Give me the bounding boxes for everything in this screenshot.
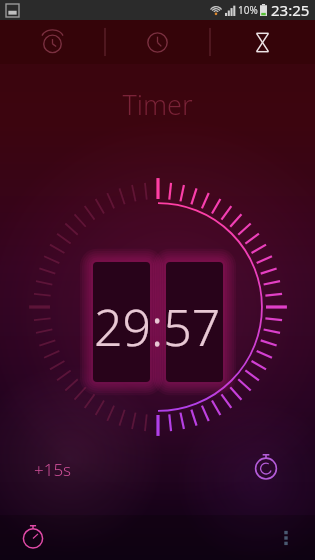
staticText: +15s bbox=[34, 458, 72, 481]
button[interactable]: Start timer bbox=[14, 518, 52, 556]
staticText: 23:25 bbox=[271, 0, 310, 20]
staticText: 29:57 bbox=[94, 293, 221, 361]
staticText: 10% bbox=[238, 3, 258, 17]
button[interactable]: +15s bbox=[30, 454, 76, 485]
button[interactable]: World clock bbox=[105, 20, 210, 64]
button[interactable]: Timer bbox=[210, 20, 315, 64]
staticText: Timer bbox=[0, 86, 315, 123]
button[interactable]: Reset timer bbox=[249, 450, 283, 484]
button[interactable]: Alarm bbox=[0, 20, 105, 64]
button[interactable]: More options bbox=[267, 518, 305, 556]
